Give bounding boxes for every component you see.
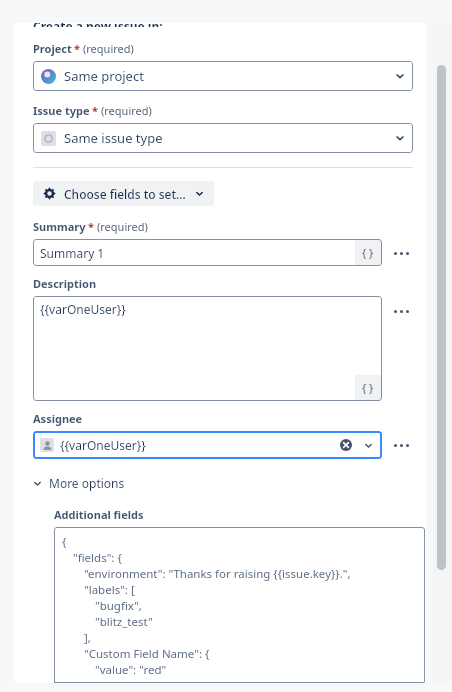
staticText: * <box>92 103 98 118</box>
button[interactable]: Clear <box>339 438 353 452</box>
staticText: * <box>88 219 94 234</box>
staticText: Assignee <box>33 411 83 426</box>
button[interactable]: { <box>54 527 425 683</box>
staticText: { } <box>362 380 374 395</box>
staticText: "labels": [ <box>84 582 135 598</box>
staticText: Summary 1 <box>40 245 105 261</box>
staticText: (required) <box>83 41 134 56</box>
staticText: Same project <box>64 67 144 85</box>
button[interactable]: More actions <box>390 243 412 263</box>
staticText: Same issue type <box>64 129 163 147</box>
staticText: "bugfix", <box>95 598 142 614</box>
staticText: Create a new issue in: <box>33 23 163 27</box>
staticText: "blitz_test" <box>95 614 153 630</box>
button[interactable]: Insert smart value <box>355 240 381 265</box>
button[interactable]: {{varOneUser}} <box>33 296 382 401</box>
staticText: (required) <box>101 103 152 118</box>
button[interactable]: More options <box>33 475 125 491</box>
button[interactable]: Same project <box>33 61 413 91</box>
button[interactable]: Choose fields to set... <box>33 181 214 206</box>
staticText: { } <box>362 245 374 260</box>
staticText: "environment": "Thanks for raising {{iss… <box>84 566 351 582</box>
staticText: Description <box>33 276 97 291</box>
staticText: "value": "red" <box>95 662 167 678</box>
staticText: More options <box>49 475 125 491</box>
staticText: "fields": { <box>73 550 122 566</box>
staticText: (required) <box>97 219 148 234</box>
staticText: Choose fields to set... <box>64 186 186 202</box>
button[interactable]: {{varOneUser}} <box>33 431 382 459</box>
staticText: { <box>62 534 67 550</box>
staticText: Summary <box>33 219 86 234</box>
staticText: } <box>84 678 89 683</box>
button[interactable]: Same issue type <box>33 123 413 153</box>
staticText: Issue type <box>33 103 90 118</box>
button[interactable]: Summary 1 <box>33 239 382 266</box>
staticText: "Custom Field Name": { <box>84 646 210 662</box>
button[interactable]: Insert smart value <box>355 375 381 400</box>
button[interactable]: More actions <box>390 435 412 455</box>
staticText: {{varOneUser}} <box>40 301 126 317</box>
button[interactable]: Open list <box>361 438 375 452</box>
staticText: {{varOneUser}} <box>60 437 146 453</box>
staticText: Additional fields <box>54 507 144 522</box>
staticText: Project <box>33 41 72 56</box>
staticText: * <box>74 41 80 56</box>
staticText: ], <box>84 630 91 646</box>
button[interactable]: More actions <box>390 301 412 321</box>
